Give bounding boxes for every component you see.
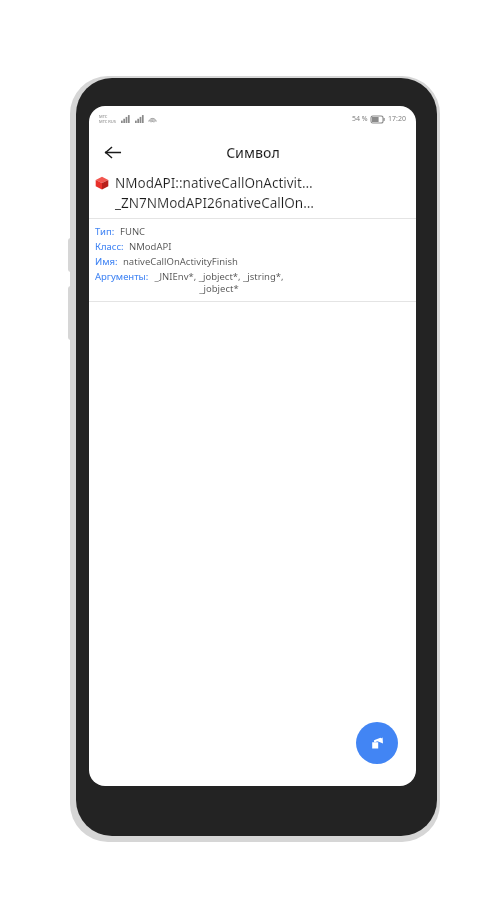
staticText: FUNC <box>120 225 146 238</box>
staticText: 54 % <box>352 114 368 124</box>
staticText: _ZN7NModAPI26nativeCallOn… <box>115 194 314 212</box>
button[interactable]: Share symbol <box>356 722 398 764</box>
staticText: МТС <box>99 114 108 119</box>
staticText: Тип: <box>95 225 115 238</box>
button[interactable]: NModAPI::nativeCallOnActivit… <box>89 172 416 218</box>
staticText: nativeCallOnActivityFinish <box>123 255 238 268</box>
button[interactable]: Back <box>95 135 129 169</box>
staticText: Имя: <box>95 255 118 268</box>
staticText: _JNIEnv*, _jobject*, _jstring*, _jobject… <box>154 270 284 295</box>
staticText: Аргументы: <box>95 270 149 283</box>
staticText: 17:20 <box>388 114 406 124</box>
staticText: Символ <box>226 143 280 162</box>
staticText: NModAPI <box>129 240 172 253</box>
staticText: МТС RUS <box>99 119 116 124</box>
staticText: NModAPI::nativeCallOnActivit… <box>115 174 313 192</box>
staticText: Класс: <box>95 240 124 253</box>
